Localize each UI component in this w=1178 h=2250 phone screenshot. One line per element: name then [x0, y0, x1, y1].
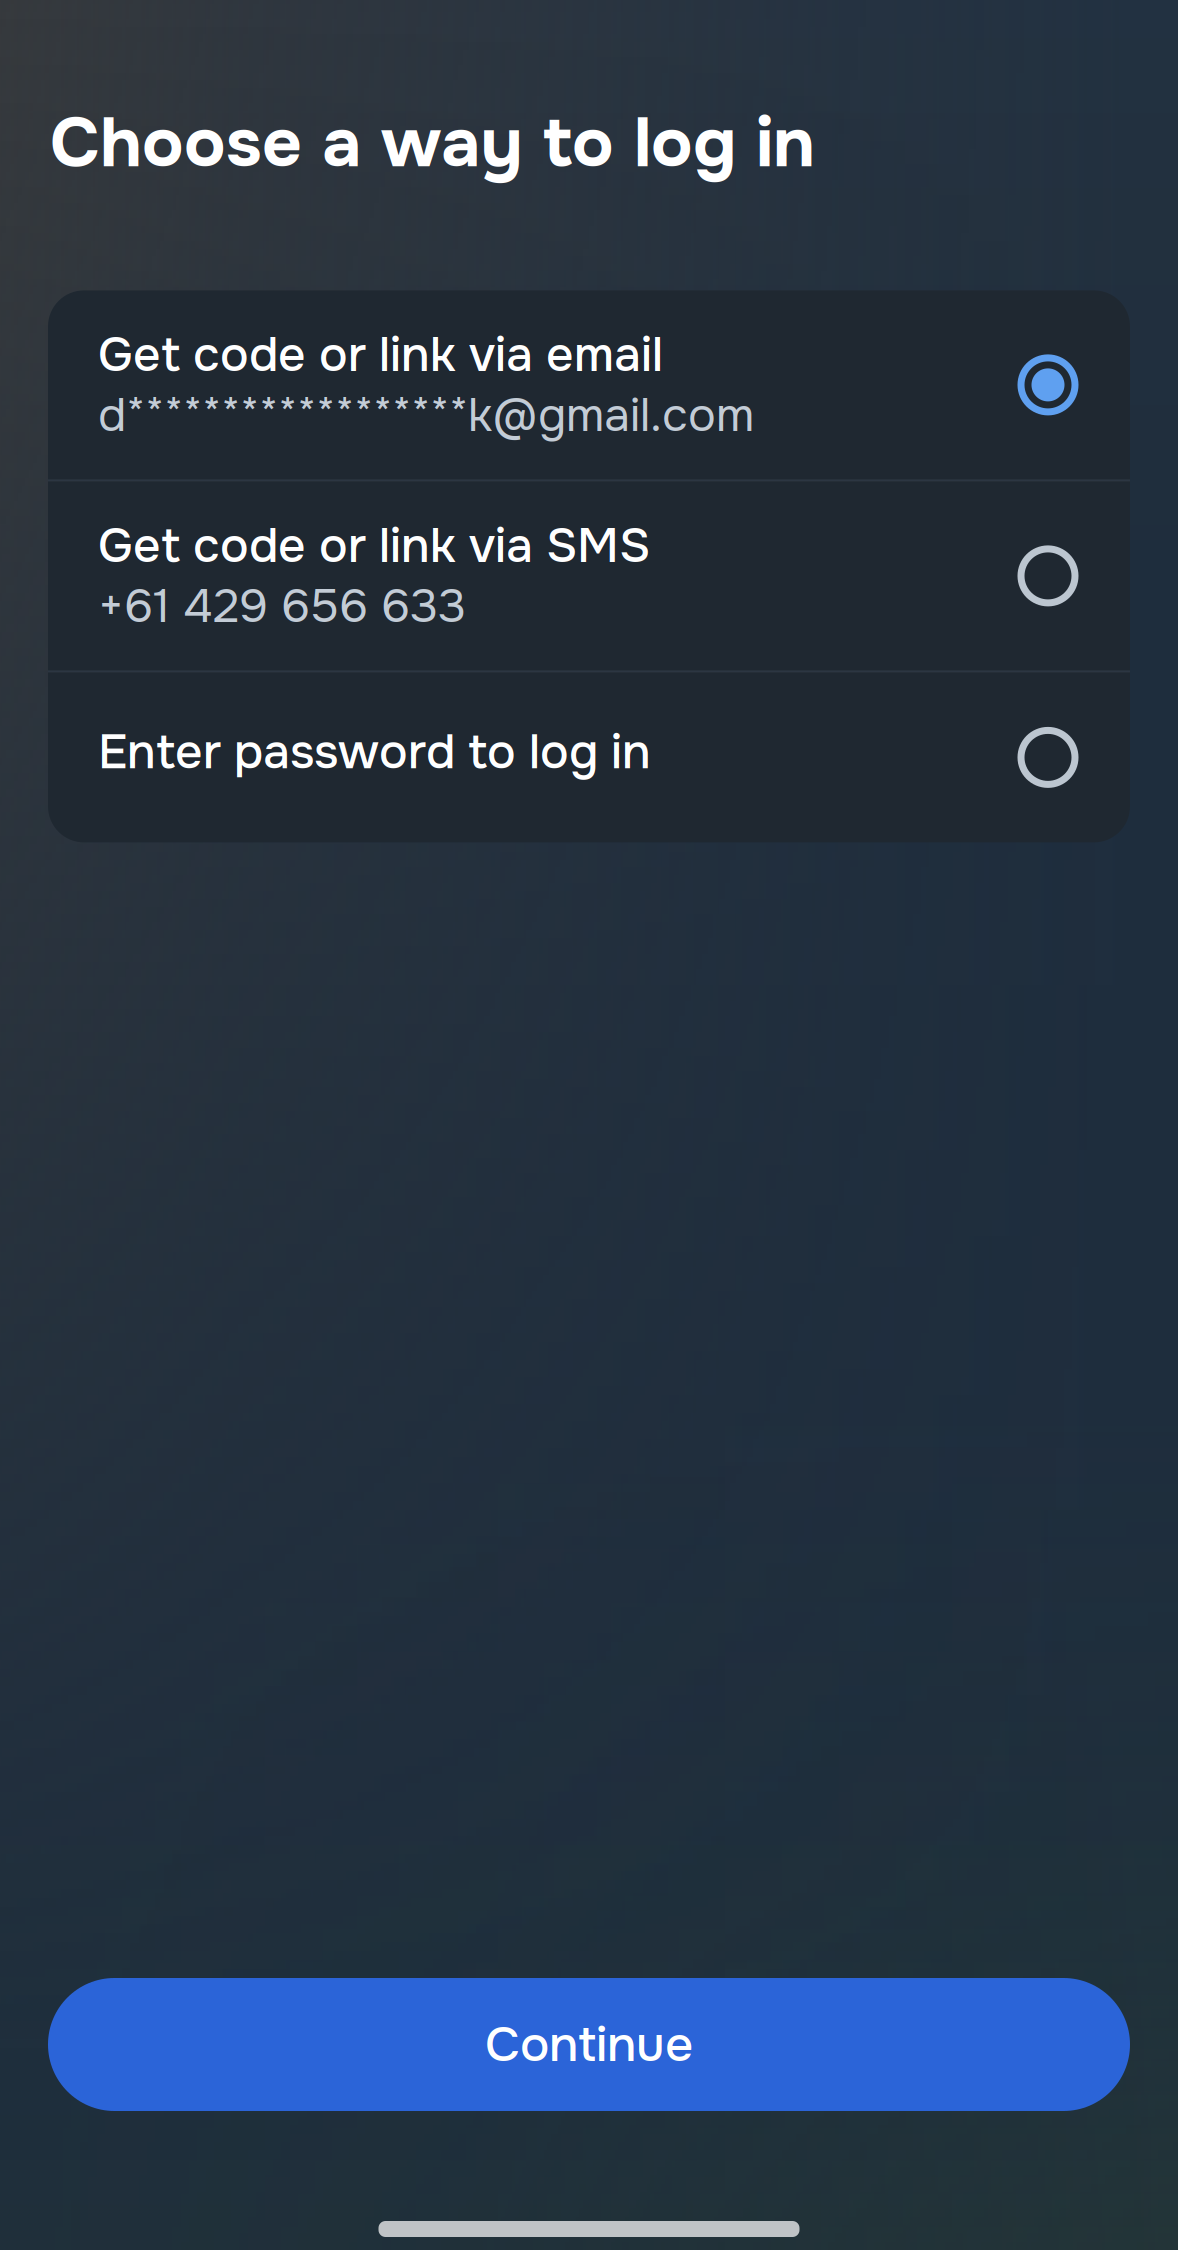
staticText: d******************k@gmail.com [98, 386, 754, 445]
button[interactable]: Get code or link via email [48, 290, 1130, 479]
staticText: +61 429 656 633 [98, 577, 466, 636]
staticText: Get code or link via email [98, 324, 663, 386]
staticText: Get code or link via SMS [98, 515, 650, 577]
button[interactable]: Continue [48, 1978, 1130, 2111]
button[interactable]: Get code or link via SMS [48, 481, 1130, 670]
staticText: Continue [485, 2013, 693, 2076]
button[interactable]: Enter password to log in [48, 672, 1130, 842]
staticText: Enter password to log in [98, 722, 651, 783]
staticText: Choose a way to log in [50, 99, 815, 187]
